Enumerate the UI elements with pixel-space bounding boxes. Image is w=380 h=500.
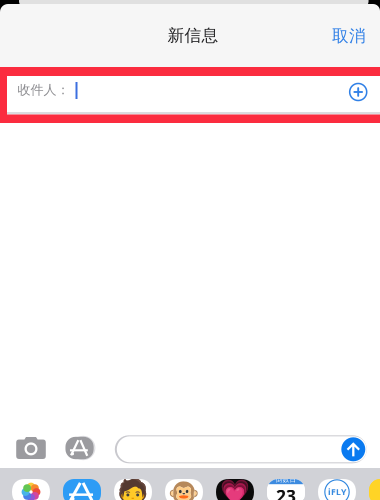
button[interactable]: Countdown [267, 479, 305, 500]
button[interactable]: 取消 [317, 14, 380, 58]
button[interactable]: Memoji [114, 479, 152, 500]
button[interactable]: Monkey memoji [165, 479, 203, 500]
staticText: 🧑 [117, 477, 149, 500]
button[interactable]: App Store [63, 479, 101, 500]
button[interactable]: Photos [12, 479, 50, 500]
button[interactable]: Camera [11, 431, 51, 465]
staticText: 💗 [220, 478, 250, 500]
button[interactable]: iFLY [318, 479, 356, 500]
staticText: 收件人： [18, 82, 70, 98]
staticText: iFLY [328, 486, 346, 498]
staticText: 取消 [332, 25, 366, 46]
staticText: 倒数日 [275, 475, 296, 484]
button[interactable]: Apps [61, 431, 99, 465]
button[interactable]: More apps [369, 479, 380, 500]
button[interactable]: Add recipient [343, 77, 373, 107]
staticText: 新信息 [167, 25, 218, 46]
staticText: 23 [276, 484, 296, 500]
button[interactable]: Send [341, 437, 365, 461]
button[interactable]: Fitness [216, 479, 254, 500]
staticText: 🐵 [168, 477, 200, 500]
